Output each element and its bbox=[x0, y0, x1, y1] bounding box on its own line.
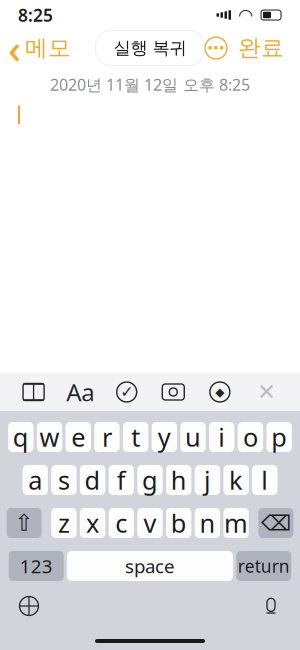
staticText: y bbox=[158, 420, 171, 454]
staticText: o bbox=[243, 420, 258, 454]
staticText: 실행 복귀 bbox=[113, 37, 186, 59]
staticText: ⇧ bbox=[15, 510, 34, 536]
staticText: p bbox=[271, 420, 287, 454]
button[interactable]: u bbox=[180, 422, 206, 452]
button[interactable]: p bbox=[266, 422, 292, 452]
button[interactable]: h bbox=[166, 465, 191, 495]
staticText: q bbox=[13, 420, 29, 454]
button[interactable]: g bbox=[137, 465, 163, 495]
staticText: 완료 bbox=[238, 34, 284, 62]
button[interactable]: m bbox=[223, 508, 249, 538]
button[interactable]: l bbox=[252, 465, 277, 495]
staticText: s bbox=[58, 463, 70, 497]
staticText: Aa bbox=[66, 376, 94, 408]
staticText: n bbox=[199, 506, 215, 540]
button[interactable]: Return bbox=[236, 551, 291, 581]
button[interactable]: Change keyboard bbox=[14, 592, 44, 620]
button[interactable]: w bbox=[37, 422, 62, 452]
staticText: return bbox=[238, 554, 290, 577]
button[interactable]: o bbox=[238, 422, 263, 452]
button[interactable]: z bbox=[51, 508, 77, 538]
staticText: u bbox=[185, 420, 201, 454]
staticText: b bbox=[171, 506, 187, 540]
button[interactable]: d bbox=[80, 465, 105, 495]
button[interactable]: t bbox=[123, 422, 148, 452]
staticText: l bbox=[261, 463, 268, 497]
button[interactable]: ‹ bbox=[0, 17, 71, 78]
button[interactable]: More options bbox=[202, 34, 230, 62]
staticText: space bbox=[125, 554, 175, 578]
staticText: j bbox=[204, 463, 211, 497]
staticText: r bbox=[102, 420, 112, 454]
staticText: z bbox=[58, 506, 70, 540]
button[interactable]: q bbox=[8, 422, 33, 452]
button[interactable]: e bbox=[65, 422, 91, 452]
button[interactable]: Close keyboard bbox=[249, 377, 283, 407]
staticText: i bbox=[218, 420, 225, 454]
staticText: ⌫ bbox=[261, 511, 291, 535]
button[interactable]: v bbox=[137, 508, 163, 538]
button[interactable]: b bbox=[166, 508, 191, 538]
staticText: h bbox=[171, 463, 187, 497]
button[interactable]: f bbox=[109, 465, 134, 495]
staticText: m bbox=[224, 506, 248, 540]
staticText: ✕ bbox=[257, 379, 276, 405]
button[interactable]: Markup bbox=[203, 377, 237, 407]
button[interactable]: Camera bbox=[156, 377, 190, 407]
staticText: g bbox=[142, 463, 158, 497]
button[interactable]: c bbox=[109, 508, 134, 538]
staticText: ◆ bbox=[215, 385, 224, 399]
button[interactable]: Text formatting bbox=[63, 377, 97, 407]
button[interactable]: Dictate bbox=[256, 592, 286, 620]
staticText: k bbox=[229, 463, 243, 497]
button[interactable]: s bbox=[51, 465, 77, 495]
button[interactable]: i bbox=[209, 422, 234, 452]
button[interactable]: j bbox=[195, 465, 220, 495]
button[interactable]: Insert table bbox=[17, 377, 51, 407]
button[interactable]: Shift bbox=[7, 508, 42, 538]
staticText: v bbox=[143, 506, 156, 540]
button[interactable]: Checklist bbox=[110, 377, 144, 407]
staticText: 2020년 11월 12일 오후 8:25 bbox=[50, 74, 250, 95]
staticText: a bbox=[28, 463, 42, 497]
button[interactable]: k bbox=[223, 465, 249, 495]
staticText: c bbox=[115, 506, 127, 540]
staticText: f bbox=[117, 463, 126, 497]
button[interactable]: x bbox=[80, 508, 105, 538]
button[interactable]: Numbers bbox=[9, 551, 64, 581]
button[interactable]: 실행 복귀 bbox=[95, 30, 204, 66]
staticText: ✓ bbox=[120, 383, 133, 401]
staticText: ◠ bbox=[239, 5, 252, 25]
button[interactable]: a bbox=[22, 465, 48, 495]
staticText: ⋯ bbox=[207, 38, 224, 58]
staticText: w bbox=[39, 420, 59, 454]
staticText: t bbox=[131, 420, 140, 454]
staticText: d bbox=[85, 463, 101, 497]
button[interactable]: r bbox=[94, 422, 120, 452]
staticText: e bbox=[71, 420, 85, 454]
staticText: 123 bbox=[20, 554, 53, 578]
button[interactable]: Delete bbox=[258, 508, 293, 538]
button[interactable]: y bbox=[152, 422, 177, 452]
button[interactable]: n bbox=[195, 508, 220, 538]
staticText: x bbox=[86, 506, 99, 540]
button[interactable]: space bbox=[67, 551, 233, 581]
staticText: 메모 bbox=[25, 34, 71, 62]
button[interactable]: 완료 bbox=[230, 30, 292, 66]
staticText: 8:25 bbox=[18, 3, 53, 26]
staticText: ‹ bbox=[8, 21, 21, 74]
